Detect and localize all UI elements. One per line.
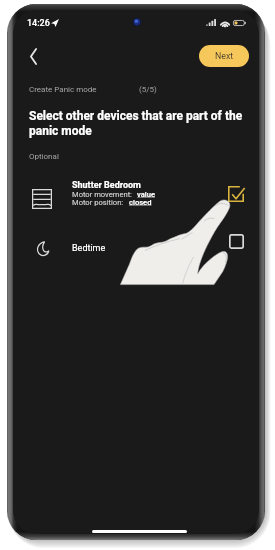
staticText: Optional [29, 152, 59, 161]
staticText: Shutter Bedroom [72, 180, 141, 191]
staticText: (5/5) [139, 85, 157, 94]
staticText: 14:26 [27, 18, 50, 29]
staticText: Bedtime [72, 243, 106, 254]
staticText: Select other devices that are part of th… [29, 109, 245, 137]
button[interactable]: Shutter Bedroom selected [225, 183, 247, 205]
button[interactable]: Bedtime [13, 231, 259, 261]
button[interactable]: Bedtime not selected [225, 230, 247, 252]
staticText: value [137, 190, 156, 199]
staticText: Motor movement: [72, 190, 134, 199]
staticText: closed [129, 198, 152, 207]
button[interactable]: Back [20, 43, 46, 69]
staticText: Create Panic mode [29, 85, 97, 94]
button[interactable]: Next [199, 45, 249, 67]
staticText: Next [215, 51, 234, 61]
staticText: Motor position: [72, 198, 126, 207]
button[interactable]: Shutter Bedroom [13, 180, 259, 217]
